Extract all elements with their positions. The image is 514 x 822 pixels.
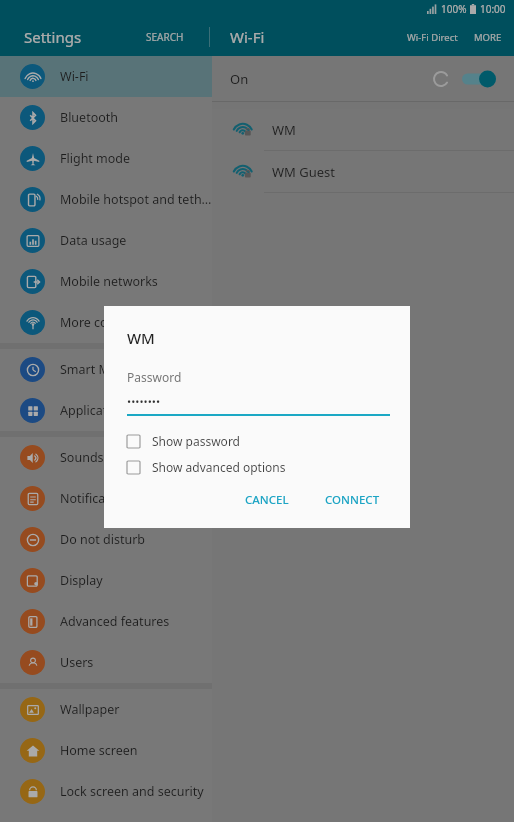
staticText: Wi-Fi bbox=[230, 27, 265, 47]
staticText: Wi-Fi bbox=[60, 68, 89, 85]
staticText: MORE bbox=[474, 31, 502, 44]
staticText: Applicatio… bbox=[60, 402, 129, 419]
button[interactable]: WM Guest bbox=[212, 151, 514, 193]
button[interactable]: Show password bbox=[127, 433, 390, 449]
button[interactable]: CONNECT bbox=[315, 486, 390, 514]
button[interactable]: More conn… bbox=[0, 302, 212, 343]
button[interactable]: Smart Ma… bbox=[0, 349, 212, 390]
staticText: 10:00 bbox=[480, 2, 506, 16]
button[interactable]: Mobile hotspot and tetheri… bbox=[0, 179, 212, 220]
button[interactable]: Bluetooth bbox=[0, 97, 212, 138]
button[interactable]: CANCEL bbox=[235, 486, 299, 514]
staticText: Display bbox=[60, 572, 103, 589]
button[interactable]: Flight mode bbox=[0, 138, 212, 179]
button[interactable]: Lock screen and security bbox=[0, 771, 212, 812]
button[interactable]: Data usage bbox=[0, 220, 212, 261]
staticText: On bbox=[230, 70, 249, 88]
button[interactable]: Wallpaper bbox=[0, 689, 212, 730]
staticText: Do not disturb bbox=[60, 531, 145, 548]
staticText: Settings bbox=[24, 27, 82, 47]
button[interactable]: Wi-Fi Direct bbox=[407, 31, 458, 44]
button[interactable]: SEARCH bbox=[146, 30, 184, 44]
button[interactable]: Show advanced options bbox=[127, 459, 390, 475]
staticText: Wallpaper bbox=[60, 701, 120, 718]
button[interactable]: Do not disturb bbox=[0, 519, 212, 560]
staticText: SEARCH bbox=[146, 30, 184, 44]
staticText: •••••••• bbox=[127, 394, 161, 409]
staticText: 100% bbox=[441, 2, 467, 16]
staticText: Mobile networks bbox=[60, 273, 158, 290]
staticText: More conn… bbox=[60, 314, 134, 331]
button[interactable]: Home screen bbox=[0, 730, 212, 771]
staticText: WM Guest bbox=[272, 163, 336, 181]
staticText: Users bbox=[60, 654, 94, 671]
staticText: WM bbox=[127, 328, 155, 348]
button[interactable]: Wi-Fi toggle bbox=[462, 70, 496, 88]
button[interactable]: Notificatio… bbox=[0, 478, 212, 519]
staticText: WM bbox=[272, 121, 296, 139]
button[interactable]: Wi-Fi bbox=[0, 56, 212, 97]
button[interactable]: Mobile networks bbox=[0, 261, 212, 302]
staticText: Password bbox=[127, 369, 182, 385]
staticText: Bluetooth bbox=[60, 109, 119, 126]
staticText: Show advanced options bbox=[152, 459, 286, 475]
button[interactable]: Applicatio… bbox=[0, 390, 212, 431]
staticText: Data usage bbox=[60, 232, 127, 249]
button[interactable]: Users bbox=[0, 642, 212, 683]
staticText: Sounds an… bbox=[60, 449, 132, 466]
staticText: Advanced features bbox=[60, 613, 170, 630]
staticText: Home screen bbox=[60, 742, 138, 759]
staticText: Flight mode bbox=[60, 150, 131, 167]
staticText: CANCEL bbox=[245, 492, 289, 508]
staticText: CONNECT bbox=[325, 492, 380, 508]
button[interactable]: Advanced features bbox=[0, 601, 212, 642]
staticText: Notificatio… bbox=[60, 490, 131, 507]
button[interactable]: Sounds an… bbox=[0, 437, 212, 478]
staticText: Mobile hotspot and tetheri… bbox=[60, 191, 212, 208]
staticText: Wi-Fi Direct bbox=[407, 31, 458, 44]
staticText: Lock screen and security bbox=[60, 783, 204, 800]
button[interactable]: Display bbox=[0, 560, 212, 601]
staticText: Smart Ma… bbox=[60, 361, 127, 378]
staticText: Show password bbox=[152, 433, 240, 449]
button[interactable]: MORE bbox=[474, 31, 502, 44]
other: Scanning bbox=[434, 72, 448, 86]
button[interactable]: WM bbox=[212, 109, 514, 151]
